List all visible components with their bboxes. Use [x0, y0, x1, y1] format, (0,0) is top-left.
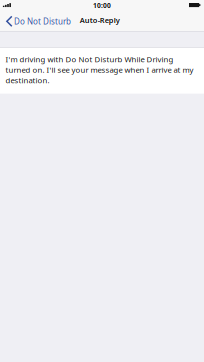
- staticText: 10:00: [93, 1, 111, 10]
- staticText: I'm driving with Do Not Disturb While Dr…: [5, 54, 193, 86]
- staticText: Auto-Reply: [80, 15, 120, 25]
- button[interactable]: Do Not Disturb: [0, 13, 75, 29]
- staticText: Do Not Disturb: [14, 16, 71, 27]
